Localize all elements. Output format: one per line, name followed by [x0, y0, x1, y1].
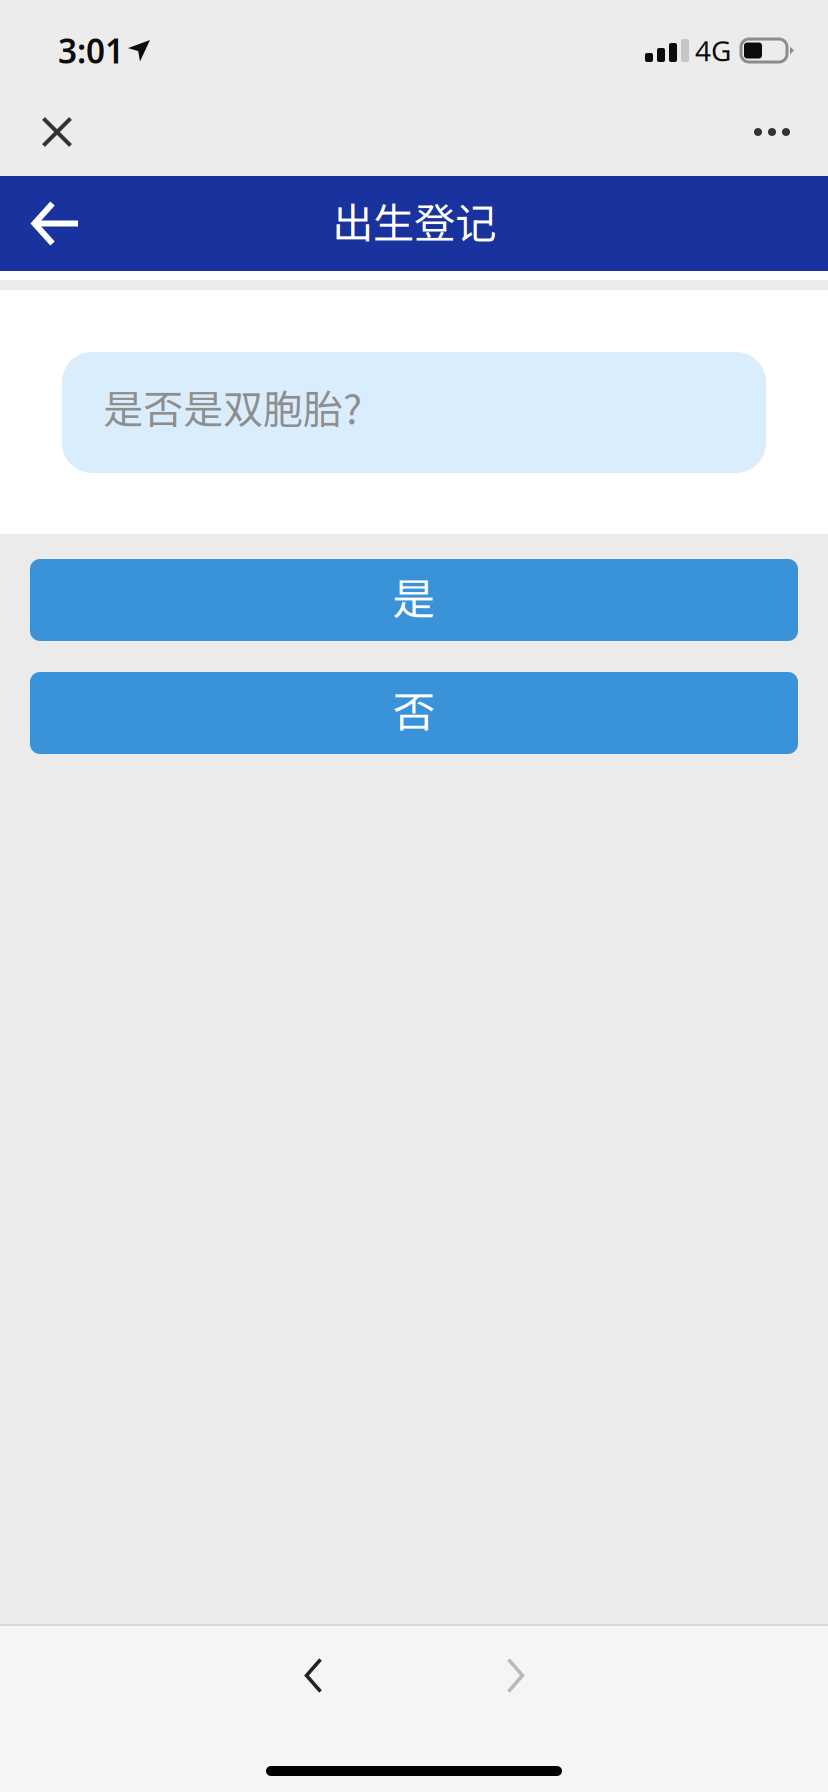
- button[interactable]: 否: [30, 672, 798, 754]
- button[interactable]: More options: [729, 88, 815, 176]
- staticText: 4G: [695, 32, 731, 69]
- staticText: 3:01: [58, 28, 124, 73]
- staticText: 是: [392, 565, 435, 627]
- button[interactable]: 是: [30, 559, 798, 641]
- button[interactable]: Close: [14, 88, 100, 176]
- button[interactable]: Go forward: [459, 1626, 572, 1725]
- staticText: 出生登记: [332, 191, 496, 250]
- button[interactable]: Go back: [257, 1626, 370, 1725]
- staticText: 否: [392, 678, 435, 740]
- button[interactable]: Back: [0, 176, 112, 271]
- staticText: 是否是双胞胎?: [103, 377, 362, 435]
